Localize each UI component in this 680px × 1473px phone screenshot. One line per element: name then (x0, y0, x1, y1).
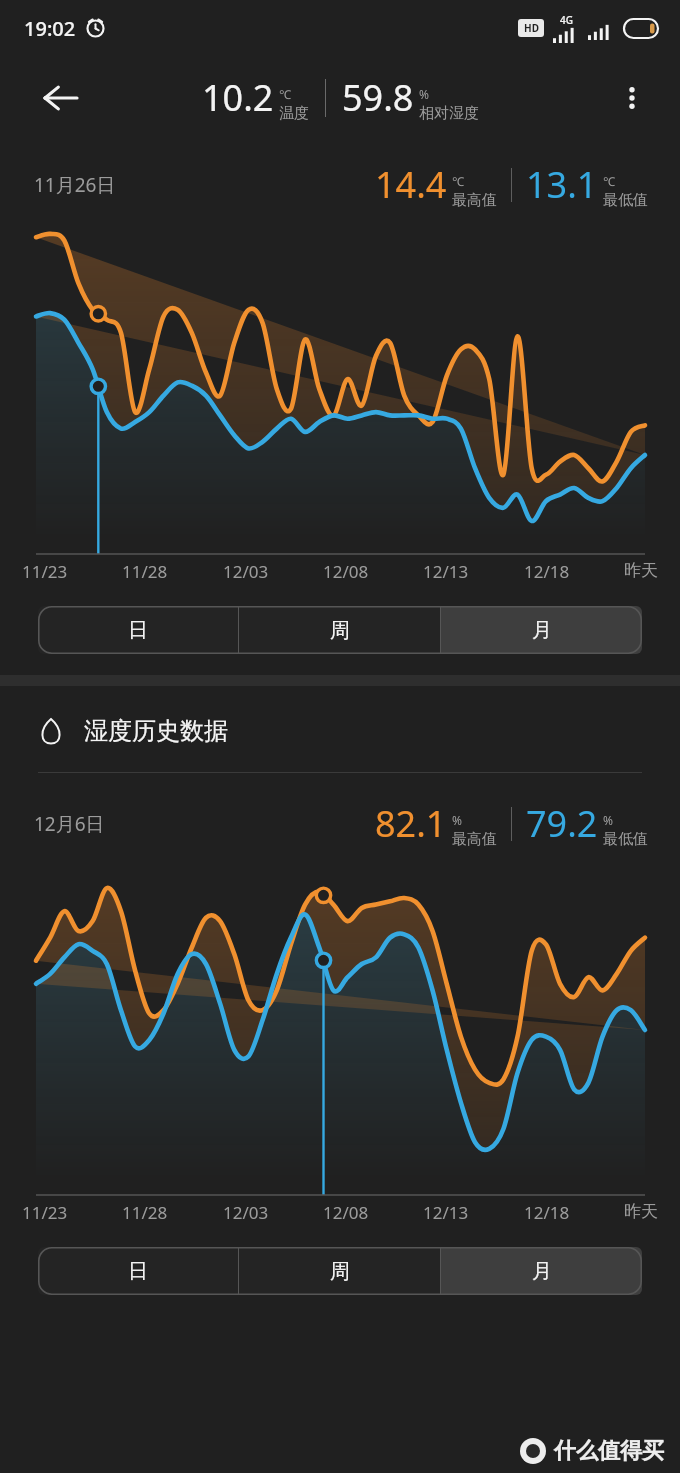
staticText: 12/13 (423, 1201, 469, 1224)
staticText: 12/13 (423, 560, 469, 583)
staticText: 11/28 (122, 1201, 168, 1224)
staticText: 日 (128, 1259, 148, 1284)
staticText: 11/28 (122, 560, 168, 583)
staticText: 12/03 (223, 560, 269, 583)
staticText: 14.4 (375, 160, 447, 209)
staticText: 12/03 (223, 1201, 269, 1224)
staticText: 11月26日 (34, 172, 116, 198)
staticText: 11/23 (22, 1201, 68, 1224)
staticText: 最高值 (452, 830, 497, 849)
staticText: 湿度历史数据 (84, 716, 228, 746)
button[interactable]: 周 (239, 1247, 440, 1295)
staticText: % (603, 812, 613, 828)
staticText: 什么值得买 (554, 1437, 664, 1465)
staticText: 昨天 (624, 560, 658, 581)
staticText: 日 (128, 618, 148, 643)
staticText: 11/23 (22, 560, 68, 583)
staticText: ℃ (452, 173, 464, 189)
button[interactable]: 月 (441, 1247, 642, 1295)
staticText: 13.1 (526, 160, 598, 209)
staticText: 月 (532, 1259, 552, 1284)
staticText: 12/18 (524, 560, 570, 583)
button[interactable]: 日 (38, 606, 238, 654)
staticText: 周 (330, 618, 350, 643)
staticText: 12/08 (323, 560, 369, 583)
staticText: 59.8 (342, 73, 414, 122)
staticText: 10.2 (202, 73, 274, 122)
staticText: % (419, 86, 429, 102)
staticText: 相对湿度 (419, 104, 479, 123)
button[interactable]: 周 (239, 606, 440, 654)
staticText: 月 (532, 618, 552, 643)
button[interactable]: More options (608, 74, 656, 122)
staticText: ℃ (279, 86, 291, 102)
staticText: HD (524, 21, 539, 35)
button[interactable]: 月 (441, 606, 642, 654)
staticText: 周 (330, 1259, 350, 1284)
staticText: 最高值 (452, 191, 497, 210)
staticText: 12月6日 (34, 811, 105, 837)
staticText: % (452, 812, 462, 828)
staticText: 12/18 (524, 1201, 570, 1224)
staticText: 82.1 (375, 799, 447, 848)
staticText: 最低值 (603, 830, 648, 849)
staticText: 12/08 (323, 1201, 369, 1224)
staticText: 温度 (279, 104, 309, 123)
button[interactable]: Back (34, 72, 86, 124)
button[interactable]: 日 (38, 1247, 238, 1295)
staticText: ℃ (603, 173, 615, 189)
staticText: 19:02 (24, 15, 76, 42)
staticText: 最低值 (603, 191, 648, 210)
staticText: 4G (560, 13, 573, 27)
staticText: 79.2 (526, 799, 598, 848)
staticText: 昨天 (624, 1201, 658, 1222)
